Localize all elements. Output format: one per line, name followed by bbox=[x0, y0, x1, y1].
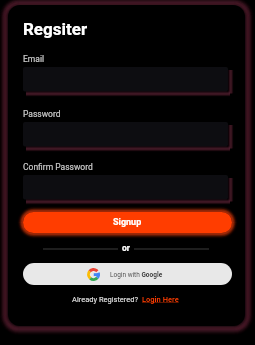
staticText: Login with Google bbox=[110, 271, 163, 279]
button[interactable]: Signup bbox=[23, 212, 232, 233]
button[interactable]: Login Here bbox=[142, 295, 179, 304]
staticText: Already Registered? bbox=[72, 295, 139, 304]
staticText: Confirm Password bbox=[23, 162, 93, 172]
staticText: Password bbox=[23, 109, 61, 119]
staticText: or bbox=[122, 243, 130, 253]
staticText: Regsiter bbox=[23, 19, 88, 39]
button[interactable] bbox=[23, 122, 234, 152]
button[interactable]: Login with Google bbox=[23, 263, 232, 285]
staticText: Email bbox=[23, 54, 45, 64]
button[interactable] bbox=[23, 67, 234, 97]
staticText: Signup bbox=[113, 217, 142, 228]
button[interactable] bbox=[23, 175, 234, 205]
staticText: Login Here bbox=[142, 295, 179, 304]
